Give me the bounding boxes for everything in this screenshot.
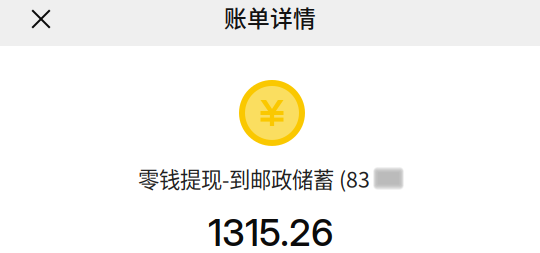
staticText: 账单详情 <box>224 1 316 33</box>
staticText: 1315.26 <box>208 210 334 253</box>
staticText: 零钱提现-到邮政储蓄 (83 <box>138 163 370 194</box>
button[interactable]: Close <box>14 0 68 42</box>
